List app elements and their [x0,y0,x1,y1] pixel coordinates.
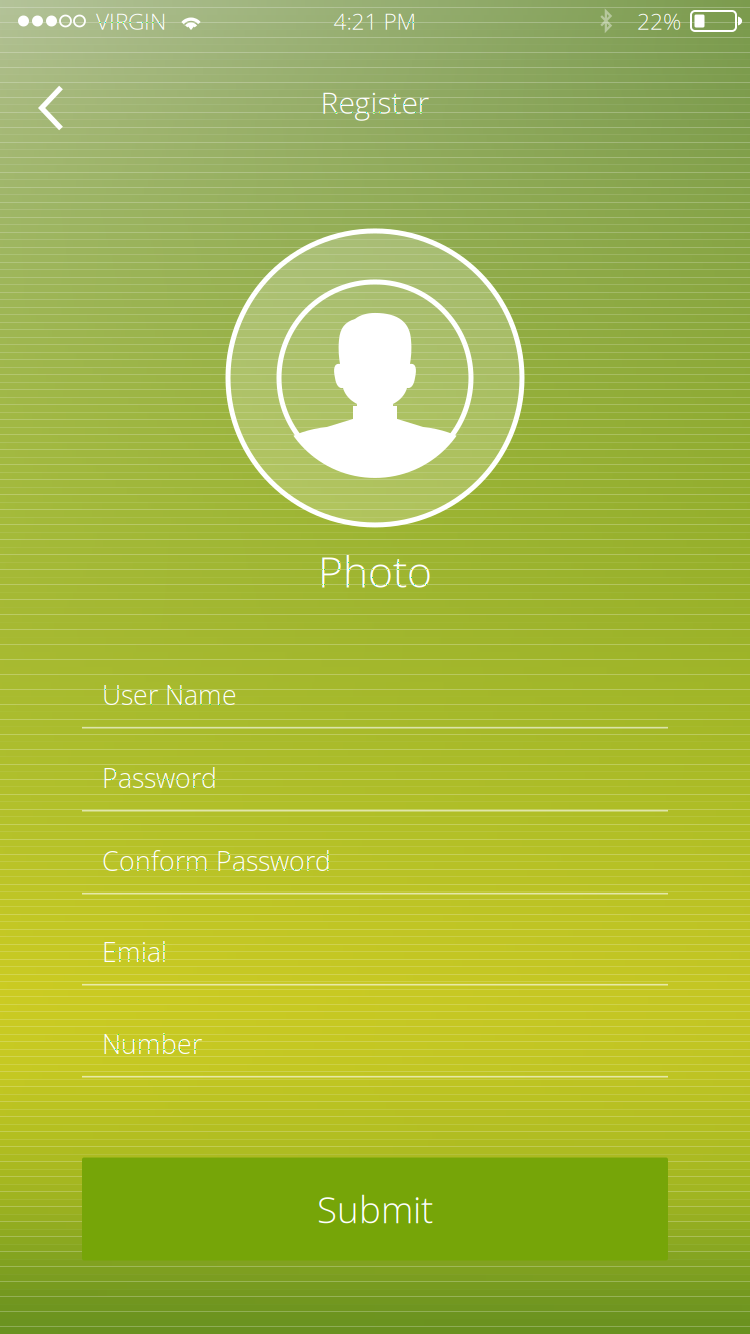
staticText: VIRGIN [96,6,166,36]
button[interactable]: User Name [82,646,668,728]
staticText: Emial [102,934,167,970]
staticText: 4:21 PM [333,6,416,36]
button[interactable]: Emial [82,894,668,985]
staticText: Number [102,1026,202,1062]
staticText: Password [102,760,217,796]
staticText: Submit [317,1184,433,1234]
button[interactable]: Back [15,72,87,144]
staticText: 22% [637,6,681,36]
staticText: Photo [318,542,432,600]
button[interactable]: Conform Password [82,811,668,894]
button[interactable]: Password [82,728,668,811]
button[interactable]: Submit [82,1157,668,1260]
staticText: Conform Password [102,843,331,879]
staticText: Register [320,82,429,122]
staticText: User Name [102,677,237,713]
button[interactable]: Number [82,985,668,1077]
button[interactable]: Photo [225,228,525,600]
